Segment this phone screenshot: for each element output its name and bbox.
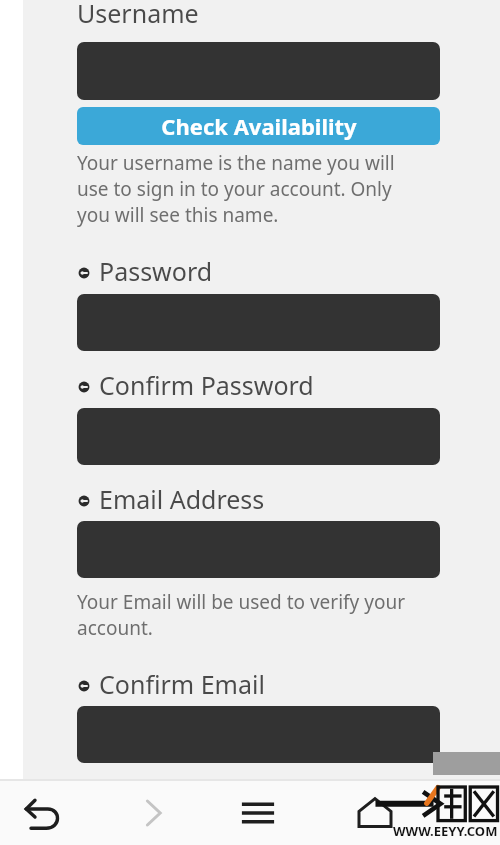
button[interactable] <box>77 706 440 763</box>
staticText: Confirm Password <box>99 368 314 402</box>
staticText: Email Address <box>99 482 265 516</box>
staticText: Confirm Email <box>99 667 265 701</box>
staticText: Your Email will be used to verify your <box>77 589 406 615</box>
button[interactable] <box>77 408 440 465</box>
button[interactable]: Back <box>8 781 78 845</box>
button[interactable]: Home <box>340 781 410 845</box>
staticText: WWW.EEYY.COM <box>393 822 498 840</box>
staticText: use to sign in to your account. Only <box>77 176 392 202</box>
button[interactable]: Forward <box>118 781 188 845</box>
button[interactable]: Menu <box>223 781 293 845</box>
staticText: you will see this name. <box>77 202 279 228</box>
staticText: Check Availability <box>161 111 357 141</box>
staticText: Password <box>99 254 213 288</box>
button[interactable] <box>77 294 440 351</box>
button[interactable] <box>77 521 440 578</box>
staticText: account. <box>77 615 153 641</box>
staticText: Username <box>77 0 199 30</box>
staticText: Your username is the name you will <box>77 150 395 176</box>
button[interactable]: Check Availability <box>77 107 440 145</box>
button[interactable] <box>77 42 440 100</box>
